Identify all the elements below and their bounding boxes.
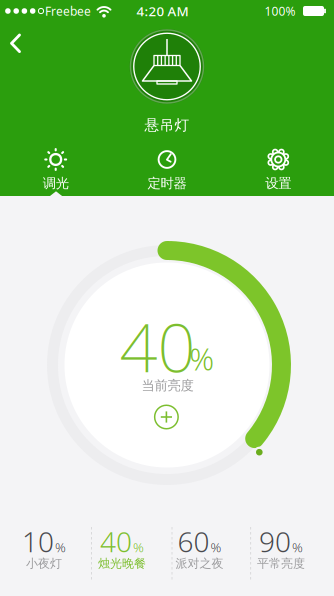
staticText: % [292,538,303,556]
staticText: 40 [120,302,196,390]
staticText: % [189,338,214,379]
button[interactable]: 设置 [223,145,334,197]
staticText: 定时器 [147,175,186,191]
staticText: 90 [259,523,291,560]
staticText: Freebee [45,3,91,19]
staticText: 10 [22,523,54,560]
button[interactable]: 60 [161,520,237,578]
staticText: % [133,538,144,556]
staticText: 设置 [265,175,291,191]
button[interactable]: 10 [6,520,82,578]
staticText: 4:20 AM [136,2,188,20]
staticText: 当前亮度 [141,377,193,394]
staticText: 60 [177,523,209,560]
staticText: % [55,538,66,556]
staticText: 100% [264,3,295,19]
button[interactable]: 增加亮度 [155,405,178,429]
staticText: % [210,538,221,556]
button[interactable]: 调光 [0,145,111,197]
staticText: 平常亮度 [257,556,305,571]
button[interactable]: Back [3,30,29,56]
button[interactable]: 90 [243,520,319,578]
staticText: 小夜灯 [26,556,62,571]
staticText: 派对之夜 [175,556,223,571]
staticText: 40 [100,523,132,560]
staticText: 调光 [43,175,69,191]
button[interactable]: 40 [84,520,160,578]
staticText: 烛光晚餐 [98,556,146,571]
button[interactable]: 定时器 [111,145,222,197]
staticText: 悬吊灯 [144,116,189,134]
